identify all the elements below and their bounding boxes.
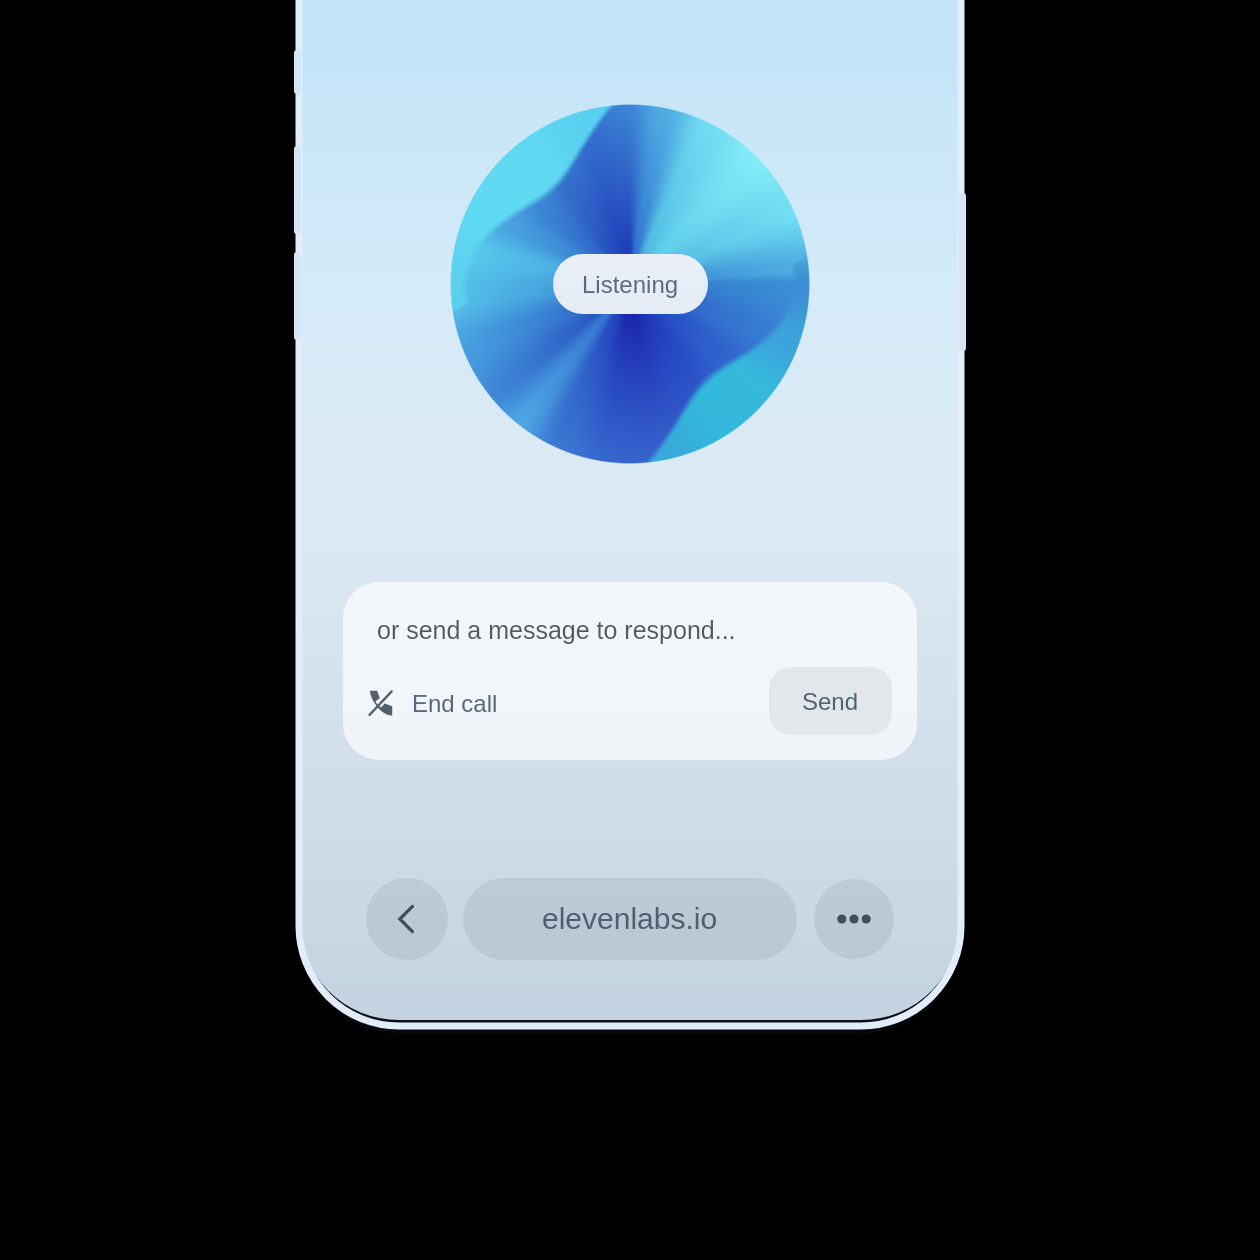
staticText: or send a message to respond... — [377, 616, 736, 644]
button[interactable]: Back — [366, 878, 448, 960]
button[interactable]: elevenlabs.io — [463, 878, 797, 960]
button[interactable]: Send — [769, 667, 892, 735]
staticText: Send — [802, 688, 859, 715]
button[interactable]: Listening — [553, 254, 708, 314]
staticText: Listening — [582, 271, 679, 298]
staticText: End call — [412, 690, 498, 717]
button[interactable]: End call — [369, 669, 498, 737]
staticText: elevenlabs.io — [542, 902, 718, 936]
button[interactable]: More options — [814, 879, 894, 959]
